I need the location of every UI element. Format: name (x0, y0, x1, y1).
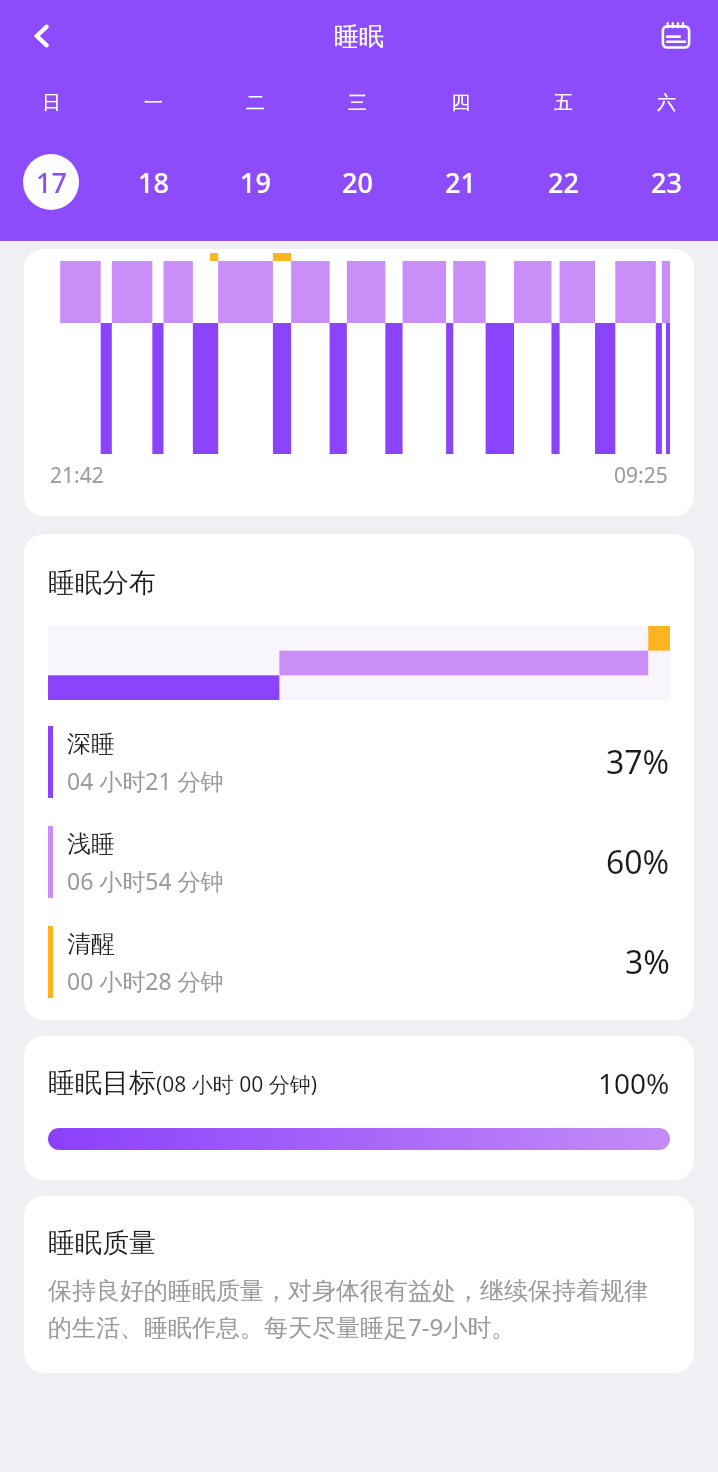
staticText: 三 (348, 91, 367, 115)
staticText: 一 (144, 91, 163, 115)
staticText: 睡眠 (334, 21, 384, 52)
staticText: 22 (548, 164, 579, 201)
button[interactable]: 17 (0, 134, 102, 230)
button[interactable]: Calendar (648, 8, 704, 64)
button[interactable]: 清醒 (48, 926, 670, 998)
staticText: 五 (554, 91, 573, 115)
staticText: 保持良好的睡眠质量，对身体很有益处，继续保持着规律的生活、睡眠作息。每天尽量睡足… (48, 1276, 670, 1343)
button[interactable]: 18 (102, 134, 204, 230)
staticText: 浅睡 (67, 829, 115, 859)
button[interactable]: 深睡 (48, 726, 670, 798)
staticText: 09:25 (614, 461, 668, 490)
button[interactable]: 22 (512, 134, 615, 230)
button[interactable]: 睡眠目标(08 小时 00 分钟) (24, 1036, 694, 1180)
staticText: 20 (342, 164, 373, 201)
staticText: 六 (657, 91, 676, 115)
button[interactable]: 睡眠质量 (24, 1196, 694, 1373)
staticText: 21:42 (50, 461, 104, 490)
staticText: 日 (42, 91, 61, 115)
staticText: 二 (246, 91, 265, 115)
staticText: 06 小时54 分钟 (67, 865, 224, 896)
button[interactable]: 20 (306, 134, 409, 230)
staticText: 深睡 (67, 729, 115, 759)
staticText: 睡眠质量 (48, 1226, 156, 1260)
button[interactable]: 21 (409, 134, 512, 230)
button[interactable]: 睡眠分布 (24, 534, 694, 1020)
button[interactable]: 浅睡 (48, 826, 670, 898)
staticText: 04 小时21 分钟 (67, 765, 224, 796)
staticText: 17 (36, 164, 67, 201)
staticText: 3% (625, 940, 670, 984)
button[interactable]: 19 (204, 134, 306, 230)
button[interactable]: 21:42 (24, 249, 694, 516)
staticText: 四 (451, 91, 470, 115)
staticText: 18 (138, 164, 169, 201)
staticText: 睡眠分布 (48, 566, 156, 600)
staticText: 60% (606, 840, 670, 884)
button[interactable]: Back (14, 8, 70, 64)
staticText: 37% (606, 740, 670, 784)
staticText: 100% (598, 1064, 670, 1102)
button[interactable]: 23 (615, 134, 718, 230)
staticText: 19 (240, 164, 271, 201)
staticText: 清醒 (67, 929, 115, 959)
staticText: 21 (445, 164, 476, 201)
staticText: 睡眠目标(08 小时 00 分钟) (48, 1066, 598, 1100)
staticText: 00 小时28 分钟 (67, 965, 224, 996)
staticText: 23 (651, 164, 682, 201)
